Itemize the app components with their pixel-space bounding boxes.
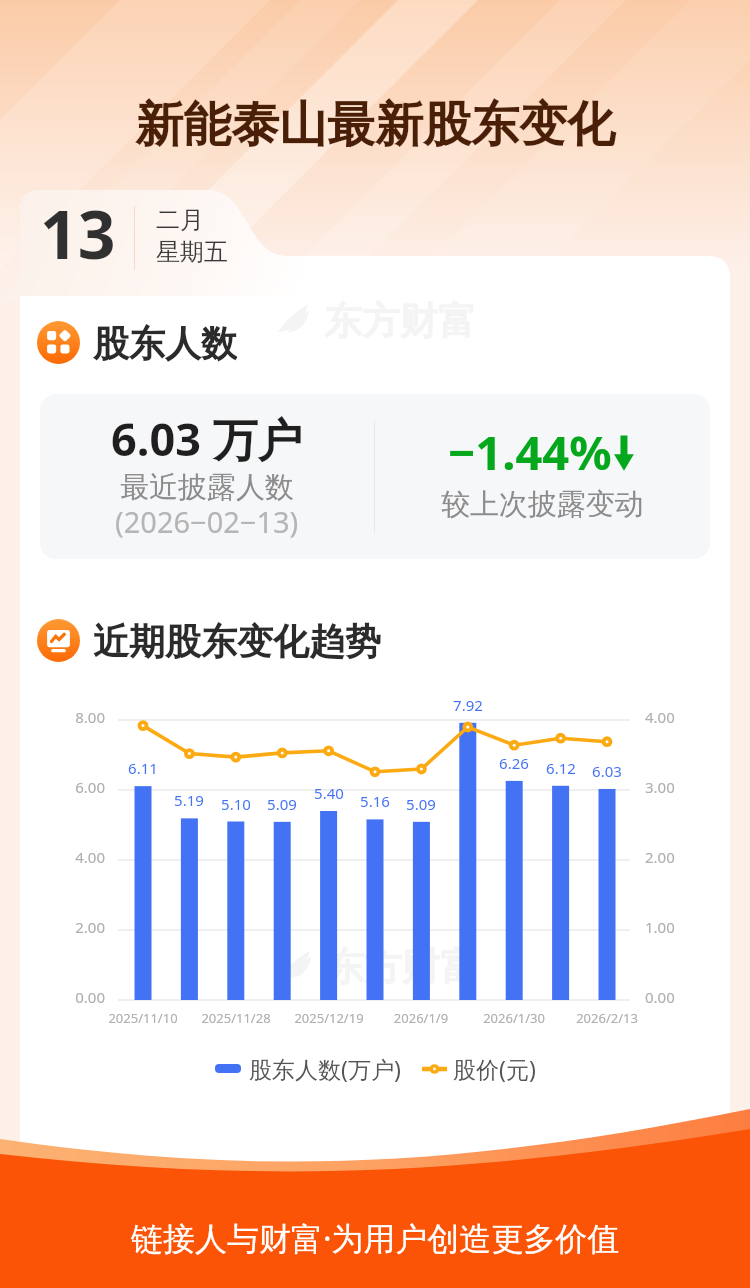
- staticText: 6.11: [113, 758, 173, 778]
- staticText: 链接人与财富·为用户创造更多价值: [131, 1216, 620, 1260]
- staticText: 较上次披露变动: [441, 486, 644, 523]
- staticText: (2026−02−13): [115, 502, 299, 541]
- staticText: 6.03 万户: [111, 408, 303, 469]
- staticText: 5.10: [206, 794, 266, 814]
- staticText: 2026/1/30: [454, 1009, 574, 1027]
- staticText: 2026/1/9: [361, 1009, 481, 1027]
- staticText: 6.03: [577, 761, 637, 781]
- staticText: 0.00: [645, 987, 709, 1007]
- staticText: 5.19: [159, 790, 219, 810]
- staticText: 近期股东变化趋势: [93, 619, 381, 662]
- staticText: 4.00: [645, 707, 709, 727]
- staticText: 1.00: [645, 917, 709, 937]
- staticText: 6.00: [41, 777, 105, 797]
- staticText: 2026/2/13: [547, 1009, 667, 1027]
- staticText: 5.40: [299, 783, 359, 803]
- staticText: 东方财富: [326, 943, 478, 985]
- staticText: 最近披露人数: [120, 469, 294, 506]
- staticText: 7.92: [438, 695, 498, 715]
- staticText: 2.00: [41, 917, 105, 937]
- staticText: 股东人数: [93, 321, 237, 364]
- staticText: 二月: [156, 205, 204, 235]
- button[interactable]: 近期股东变化趋势: [37, 619, 381, 662]
- staticText: 8.00: [41, 707, 105, 727]
- staticText: 2025/11/28: [176, 1009, 296, 1027]
- staticText: 0.00: [41, 987, 105, 1007]
- staticText: 4.00: [41, 847, 105, 867]
- staticText: 6.26: [484, 753, 544, 773]
- staticText: 13: [40, 188, 116, 278]
- staticText: 6.12: [531, 758, 591, 778]
- staticText: 3.00: [645, 777, 709, 797]
- staticText: 东方财富: [324, 297, 476, 339]
- staticText: 5.09: [252, 794, 312, 814]
- staticText: 2025/11/10: [83, 1009, 203, 1027]
- staticText: 2025/12/19: [269, 1009, 389, 1027]
- staticText: 5.16: [345, 791, 405, 811]
- staticText: 星期五: [156, 237, 228, 267]
- button[interactable]: 股东人数: [37, 321, 237, 364]
- staticText: −1.44%: [448, 420, 612, 484]
- staticText: 股价(元): [453, 1053, 536, 1084]
- staticText: 5.09: [391, 794, 451, 814]
- staticText: 股东人数(万户): [249, 1053, 401, 1084]
- staticText: 2.00: [645, 847, 709, 867]
- staticText: 新能泰山最新股东变化: [135, 95, 615, 155]
